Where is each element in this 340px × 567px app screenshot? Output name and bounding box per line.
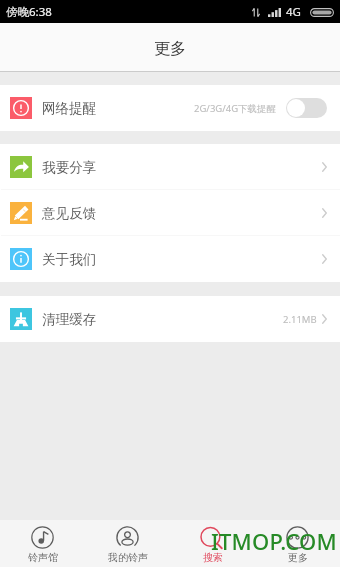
staticText: 2.11MB	[283, 313, 317, 326]
staticText: ITMOP.COM	[211, 526, 337, 556]
button[interactable]: 关于我们	[0, 236, 340, 282]
staticText: 清理缓存	[42, 311, 97, 328]
staticText: 铃声馆	[28, 551, 58, 564]
button[interactable]: 网络提醒	[0, 85, 340, 131]
staticText: 傍晚6:38	[6, 4, 52, 20]
button[interactable]: 网络提醒开关	[286, 98, 327, 118]
staticText: 我要分享	[42, 159, 97, 176]
staticText: 2G/3G/4G下载提醒	[194, 102, 277, 115]
staticText: 4G	[286, 4, 301, 20]
button[interactable]: 清理缓存	[0, 296, 340, 342]
button[interactable]: 意见反馈	[0, 190, 340, 236]
staticText: 意见反馈	[42, 205, 97, 222]
button[interactable]: 铃声馆	[0, 520, 85, 567]
button[interactable]: 我要分享	[0, 144, 340, 190]
staticText: 我的铃声	[108, 551, 148, 564]
button[interactable]: 更多	[255, 520, 340, 567]
staticText: 更多	[288, 551, 308, 564]
staticText: 关于我们	[42, 251, 97, 268]
button[interactable]: 我的铃声	[85, 520, 170, 567]
staticText: 网络提醒	[42, 100, 97, 117]
staticText: 搜索	[203, 551, 223, 564]
button[interactable]: 搜索	[170, 520, 255, 567]
staticText: 更多	[154, 39, 186, 59]
